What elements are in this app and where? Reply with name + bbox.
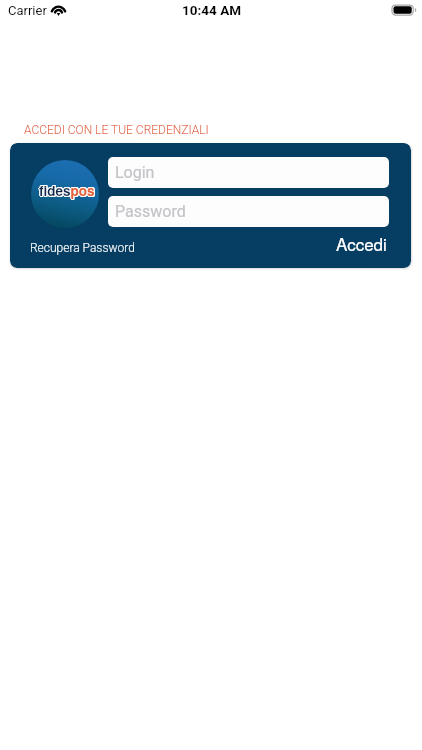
button[interactable]: Recupera Password (26, 238, 139, 258)
other: Battery full (392, 5, 417, 15)
other: Wi-Fi (50, 2, 67, 15)
staticText: fidespos (39, 182, 95, 201)
staticText: fidespos (40, 182, 96, 201)
staticText: Login (115, 163, 155, 182)
staticText: fidespos (39, 180, 95, 199)
staticText: Recupera Password (30, 241, 135, 255)
staticText: fidespos (39, 181, 95, 200)
staticText: 10:44 AM (182, 2, 242, 18)
staticText: Accedi (336, 231, 387, 255)
staticText: Carrier (8, 3, 47, 18)
button[interactable]: Accedi (331, 228, 392, 258)
button[interactable]: Login (108, 157, 389, 188)
staticText: fidespos (40, 181, 96, 200)
staticText: Password (115, 202, 186, 221)
staticText: fidespos (39, 180, 95, 199)
staticText: fidespos (39, 182, 95, 201)
staticText: ACCEDI CON LE TUE CREDENZIALI (24, 123, 209, 137)
staticText: fidespos (38, 181, 94, 200)
button[interactable]: Password (108, 196, 389, 227)
staticText: fidespos (40, 180, 96, 199)
